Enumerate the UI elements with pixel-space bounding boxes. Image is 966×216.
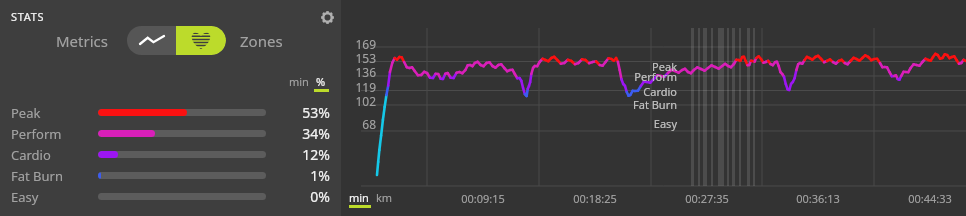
staticText: 00:44:33 <box>900 191 960 206</box>
staticText: 00:36:13 <box>788 191 848 206</box>
button[interactable]: km <box>376 190 393 205</box>
staticText: 12% <box>276 145 330 164</box>
staticText: 119 <box>348 79 376 95</box>
staticText: Fat Burn <box>571 97 677 112</box>
button[interactable]: Cardio <box>0 144 341 165</box>
button[interactable]: Peak <box>0 102 341 123</box>
staticText: STATS <box>11 9 45 24</box>
button[interactable]: Perform <box>0 123 341 144</box>
button[interactable]: Zones <box>240 31 283 51</box>
staticText: Metrics <box>56 31 108 51</box>
staticText: Perform <box>11 125 62 143</box>
button[interactable]: Fat Burn <box>0 165 341 186</box>
staticText: 102 <box>348 93 376 109</box>
staticText: Peak <box>11 104 41 122</box>
staticText: 169 <box>348 36 376 52</box>
staticText: 0% <box>276 187 330 206</box>
staticText: 00:09:15 <box>453 191 513 206</box>
staticText: Easy <box>11 188 39 206</box>
staticText: Peak <box>571 59 677 74</box>
staticText: min <box>289 74 309 89</box>
staticText: Cardio <box>571 84 677 99</box>
staticText: 53% <box>276 103 330 122</box>
staticText: Zones <box>240 31 283 51</box>
staticText: min <box>349 190 369 205</box>
button[interactable]: Easy <box>0 186 341 207</box>
button[interactable]: Settings <box>317 7 338 28</box>
button[interactable]: min <box>289 74 309 89</box>
staticText: % <box>316 74 326 89</box>
staticText: 153 <box>348 50 376 66</box>
staticText: 1% <box>276 166 330 185</box>
button[interactable]: Metrics <box>56 31 108 51</box>
staticText: 00:27:35 <box>677 191 737 206</box>
button[interactable]: % <box>316 74 326 89</box>
staticText: Cardio <box>11 146 51 164</box>
button[interactable]: Toggle metrics or heart rate zones <box>127 26 226 55</box>
staticText: Perform <box>571 69 677 84</box>
staticText: 136 <box>348 64 376 80</box>
staticText: 68 <box>348 116 376 132</box>
staticText: 00:18:25 <box>565 191 625 206</box>
staticText: 34% <box>276 124 330 143</box>
staticText: km <box>376 190 393 205</box>
staticText: Easy <box>571 116 677 131</box>
button[interactable]: min <box>349 190 369 205</box>
staticText: Fat Burn <box>11 167 64 185</box>
